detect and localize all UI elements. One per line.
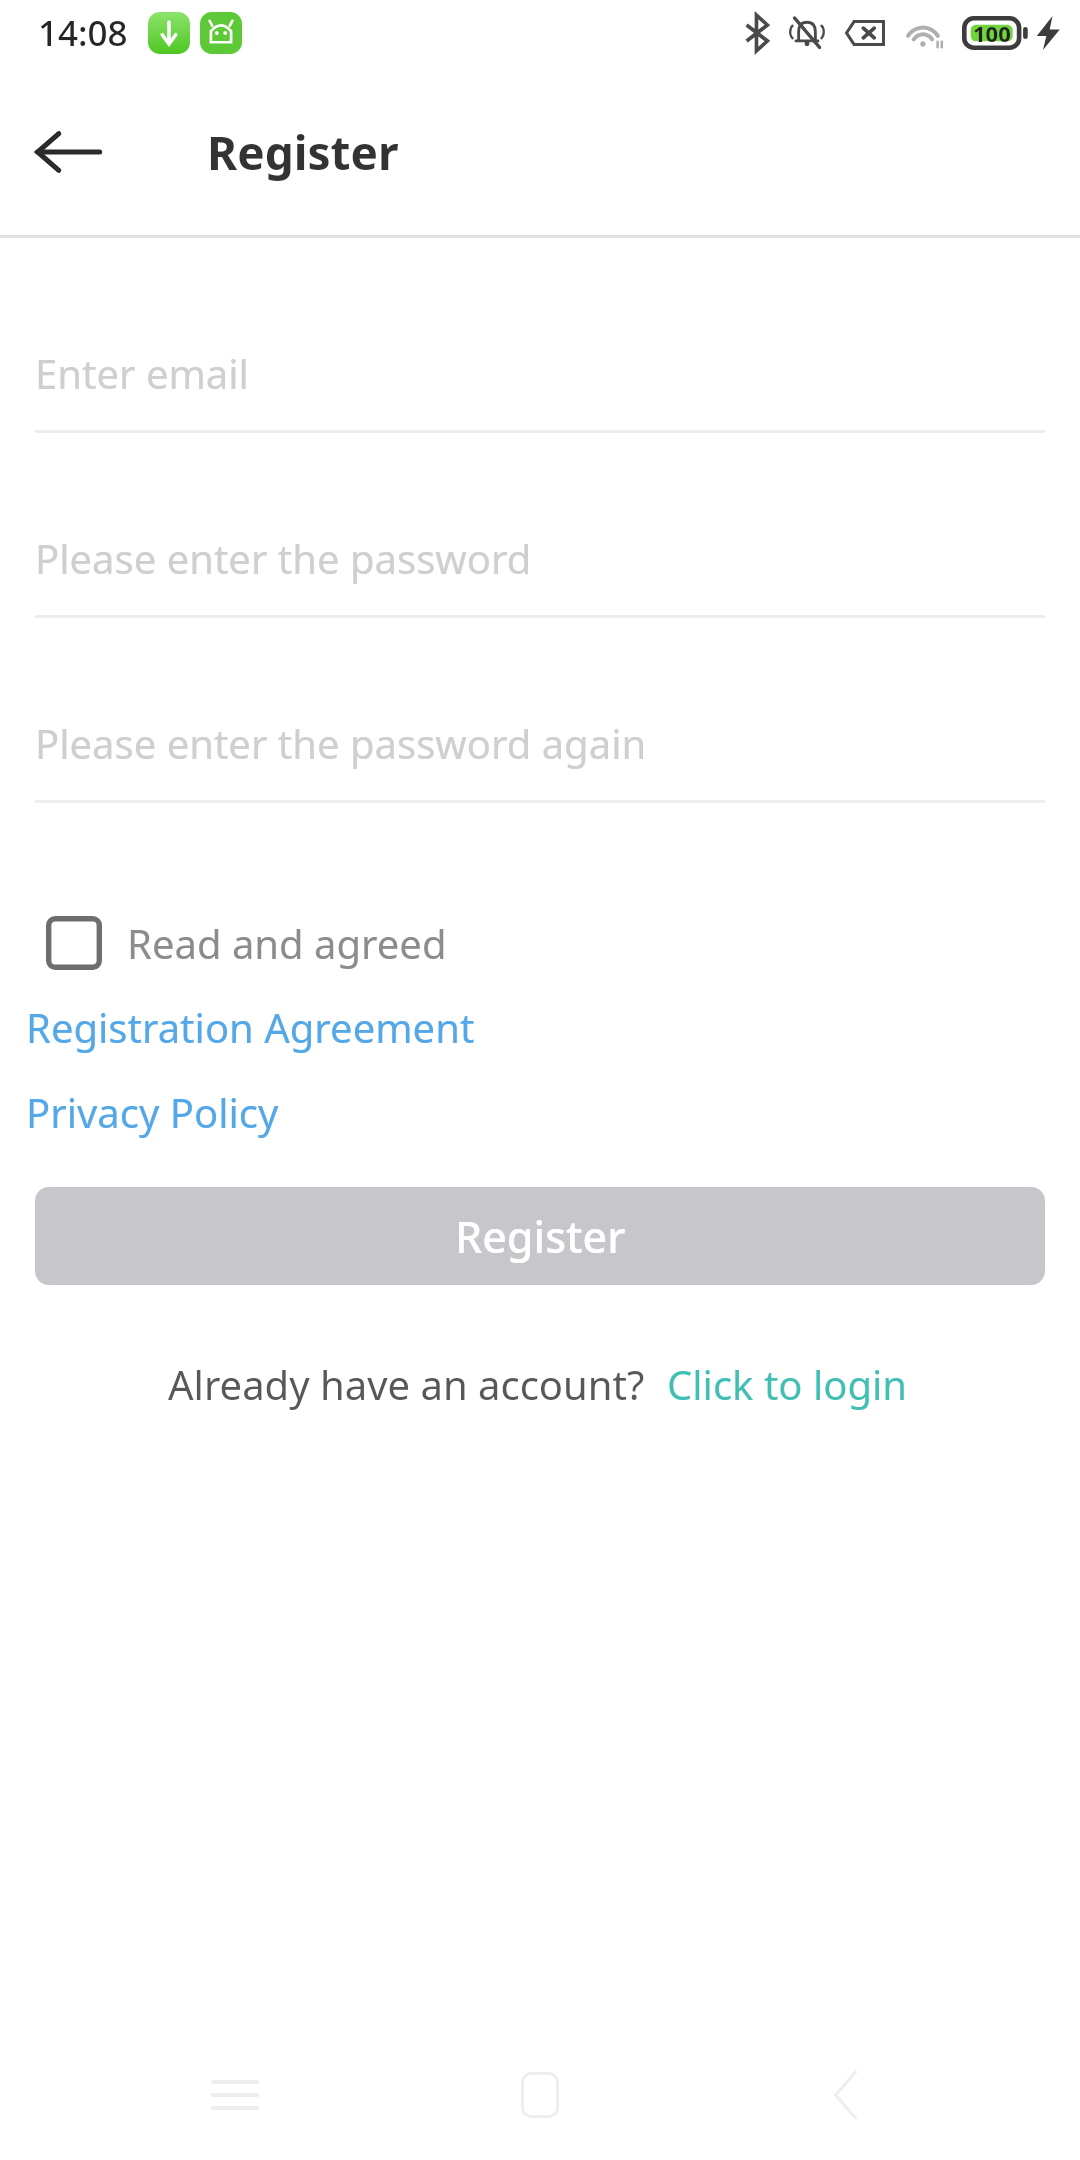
button[interactable]: Recent apps (165, 2045, 305, 2145)
staticText: Already have an account? (168, 1357, 645, 1411)
button[interactable]: Please enter the password again (35, 716, 1045, 803)
button[interactable]: Click to login (663, 1353, 912, 1415)
staticText: Please enter the password again (35, 716, 647, 770)
button[interactable]: Back (22, 106, 114, 198)
button[interactable]: Registration Agreement (18, 996, 483, 1058)
staticText: 14:08 (38, 9, 128, 57)
staticText: Read and agreed (127, 916, 447, 970)
staticText: Registration Agreement (26, 1000, 475, 1054)
staticText: Register (455, 1207, 626, 1266)
button[interactable]: Privacy Policy (18, 1081, 287, 1143)
button[interactable]: Please enter the password (35, 531, 1045, 618)
staticText: Enter email (35, 346, 249, 400)
staticText: Click to login (667, 1357, 908, 1411)
button[interactable]: Register (35, 1187, 1045, 1285)
staticText: Please enter the password (35, 531, 532, 585)
staticText: Privacy Policy (26, 1085, 279, 1139)
staticText: Register (207, 121, 399, 184)
button[interactable]: Enter email (35, 346, 1045, 433)
staticText: 100 (973, 18, 1011, 48)
button[interactable]: Read and agreed (46, 916, 447, 970)
